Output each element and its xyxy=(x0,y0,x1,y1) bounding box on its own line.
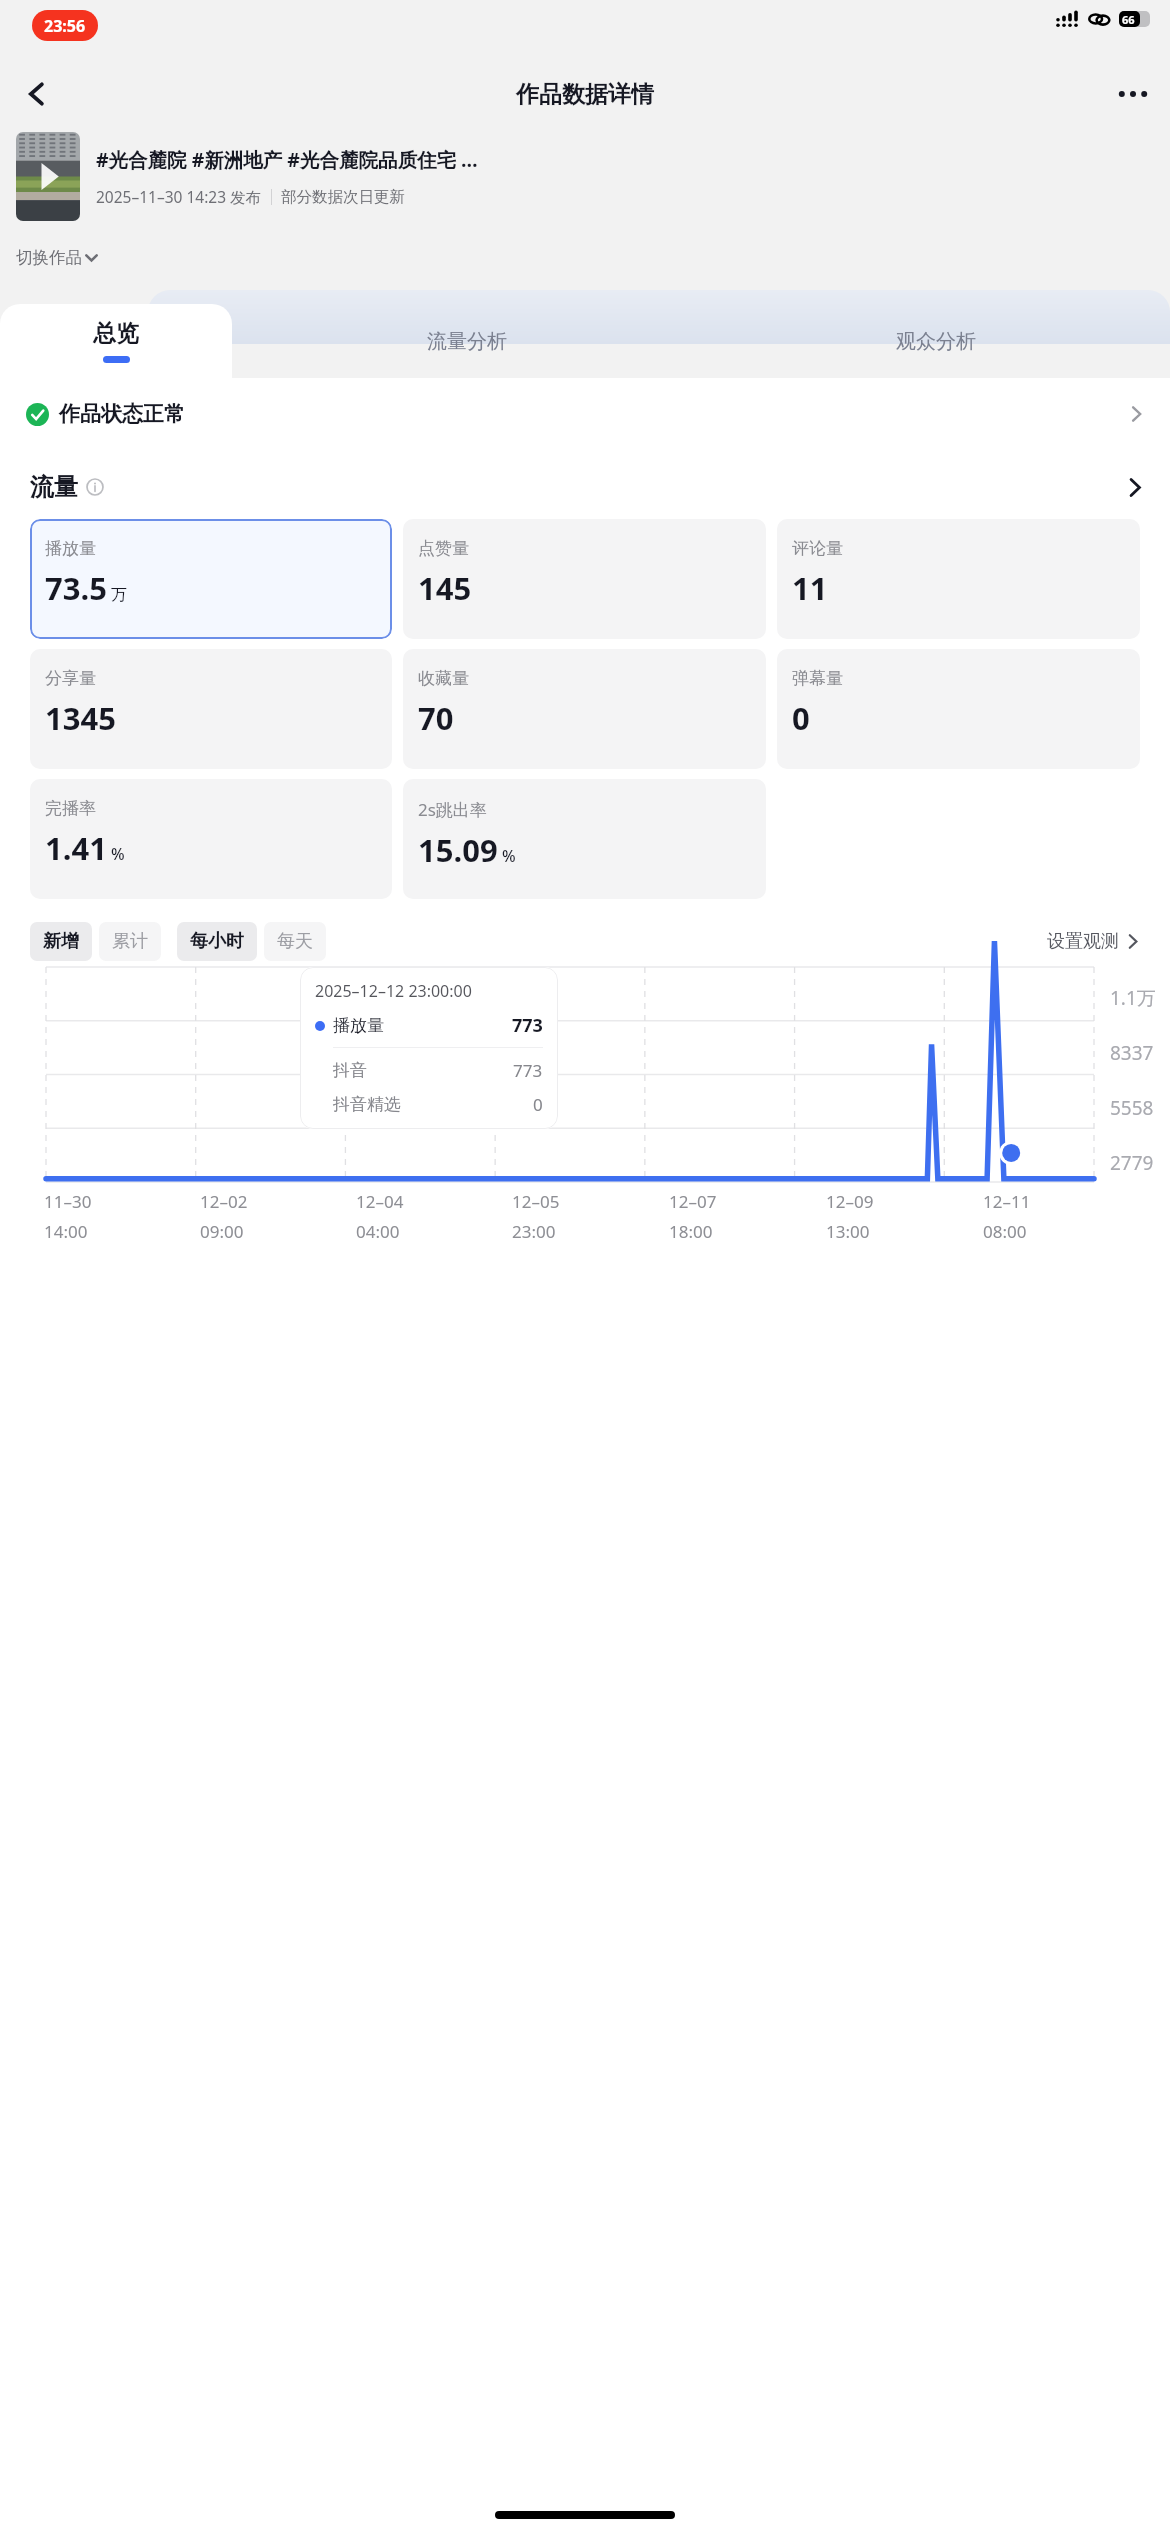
button[interactable]: 弹幕量 xyxy=(777,649,1140,769)
button[interactable]: 每天 xyxy=(264,922,326,961)
staticText: 18:00 xyxy=(669,1220,713,1243)
staticText: 完播率 xyxy=(45,798,96,819)
staticText: 2025–11–30 14:23 发布 xyxy=(96,186,262,207)
staticText: 弹幕量 xyxy=(792,668,843,689)
staticText: 23:00 xyxy=(512,1220,556,1243)
staticText: 播放量 xyxy=(45,538,96,559)
staticText: 73.5 xyxy=(45,567,107,609)
staticText: 观众分析 xyxy=(896,329,976,354)
staticText: 11–30 xyxy=(44,1190,92,1213)
button[interactable]: 评论量 xyxy=(777,519,1140,639)
staticText: 作品状态正常 xyxy=(59,401,185,427)
staticText: % xyxy=(111,843,125,865)
staticText: 2779 xyxy=(1110,1150,1154,1176)
staticText: 抖音 xyxy=(333,1060,367,1081)
staticText: 1345 xyxy=(45,697,116,739)
button[interactable]: 点赞量 xyxy=(403,519,766,639)
button[interactable]: 流量 xyxy=(30,472,1144,502)
staticText: 12–09 xyxy=(826,1190,874,1213)
staticText: 万 xyxy=(111,585,127,605)
staticText: 播放量 xyxy=(333,1015,384,1036)
staticText: 09:00 xyxy=(200,1220,244,1243)
staticText: 145 xyxy=(418,567,472,609)
staticText: 点赞量 xyxy=(418,538,469,559)
button[interactable]: 收藏量 xyxy=(403,649,766,769)
staticText: 773 xyxy=(512,1013,543,1038)
button[interactable]: More options xyxy=(1108,69,1158,119)
staticText: 1.1万 xyxy=(1110,985,1156,1011)
staticText: 12–07 xyxy=(669,1190,717,1213)
staticText: 流量 xyxy=(30,472,78,502)
staticText: 收藏量 xyxy=(418,668,469,689)
staticText: 累计 xyxy=(112,930,148,953)
staticText: 15.09 xyxy=(418,829,498,871)
button[interactable]: 累计 xyxy=(99,922,161,961)
staticText: 2s跳出率 xyxy=(418,798,487,821)
staticText: 流量分析 xyxy=(427,329,507,354)
staticText: 12–04 xyxy=(356,1190,404,1213)
button[interactable]: 每小时 xyxy=(177,922,257,961)
staticText: 23:56 xyxy=(44,15,86,37)
button[interactable]: 分享量 xyxy=(30,649,392,769)
staticText: 部分数据次日更新 xyxy=(281,187,405,207)
staticText: 切换作品 xyxy=(16,247,82,268)
button[interactable]: 总览 xyxy=(0,304,232,378)
staticText: 08:00 xyxy=(983,1220,1027,1243)
button[interactable]: 播放量 xyxy=(30,519,392,639)
staticText: 11 xyxy=(792,567,828,609)
staticText: 每天 xyxy=(277,930,313,953)
button[interactable]: 切换作品 xyxy=(16,247,98,268)
staticText: 8337 xyxy=(1110,1040,1154,1066)
staticText: 12–02 xyxy=(200,1190,248,1213)
staticText: 04:00 xyxy=(356,1220,400,1243)
staticText: 12–11 xyxy=(983,1190,1031,1213)
staticText: 14:00 xyxy=(44,1220,88,1243)
staticText: 总览 xyxy=(93,319,139,348)
staticText: 13:00 xyxy=(826,1220,870,1243)
staticText: 抖音精选 xyxy=(333,1094,401,1115)
staticText: 设置观测 xyxy=(1047,930,1119,953)
staticText: 0 xyxy=(533,1093,543,1116)
button[interactable]: 设置观测 xyxy=(1047,930,1140,953)
button[interactable]: 新增 xyxy=(30,922,92,961)
staticText: 1.41 xyxy=(45,827,107,869)
staticText: 773 xyxy=(513,1059,543,1082)
staticText: % xyxy=(502,845,516,867)
button[interactable]: 完播率 xyxy=(30,779,392,899)
staticText: 66 xyxy=(1122,12,1135,27)
button[interactable]: #光合麓院 #新洲地产 #光合麓院品质住宅 … xyxy=(16,132,1156,221)
staticText: 作品数据详情 xyxy=(516,80,654,109)
staticText: 评论量 xyxy=(792,538,843,559)
staticText: 分享量 xyxy=(45,668,96,689)
staticText: 12–05 xyxy=(512,1190,560,1213)
staticText: 2025–12–12 23:00:00 xyxy=(315,980,472,1002)
staticText: 新增 xyxy=(43,930,79,953)
button[interactable]: 2s跳出率 xyxy=(403,779,766,899)
button[interactable]: 作品状态正常 xyxy=(26,378,1144,450)
button[interactable]: 观众分析 xyxy=(701,304,1170,378)
button[interactable]: Back xyxy=(12,69,62,119)
staticText: 每小时 xyxy=(190,930,244,953)
staticText: #光合麓院 #新洲地产 #光合麓院品质住宅 … xyxy=(96,146,478,173)
staticText: 70 xyxy=(418,697,454,739)
button[interactable]: 流量分析 xyxy=(232,304,701,378)
staticText: 5558 xyxy=(1110,1095,1154,1121)
staticText: 0 xyxy=(792,697,810,739)
